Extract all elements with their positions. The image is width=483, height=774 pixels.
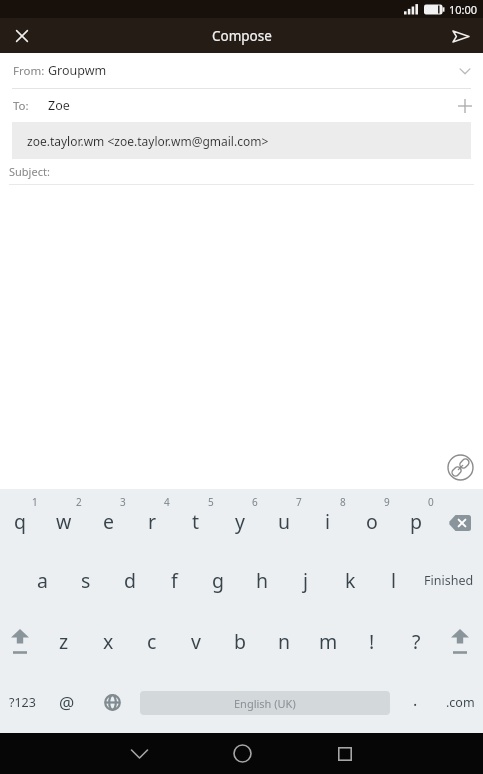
button[interactable]: u (262, 489, 306, 550)
button[interactable]: z (42, 611, 86, 672)
staticText: ! (369, 628, 375, 655)
staticText: s (81, 567, 91, 594)
staticText: @ (59, 691, 75, 714)
staticText: 3 (120, 495, 126, 509)
staticText: c (147, 628, 157, 655)
staticText: q (14, 508, 26, 535)
staticText: Groupwm (48, 62, 107, 79)
button[interactable]: r (130, 489, 174, 550)
staticText: Subject: (9, 164, 50, 179)
button[interactable] (447, 454, 474, 481)
staticText: 7 (296, 495, 302, 509)
button[interactable]: a (20, 550, 64, 611)
button[interactable]: h (240, 550, 284, 611)
button[interactable]: t (174, 489, 218, 550)
button[interactable]: f (152, 550, 196, 611)
button[interactable]: o (350, 489, 394, 550)
button[interactable]: ?123 (0, 672, 44, 733)
staticText: ? (412, 628, 421, 655)
button[interactable]: @ (44, 672, 90, 733)
button[interactable]: j (284, 550, 328, 611)
staticText: x (103, 628, 114, 655)
staticText: o (366, 508, 378, 535)
staticText: e (103, 508, 114, 535)
button[interactable]: ? (394, 611, 438, 672)
button[interactable]: k (328, 550, 372, 611)
staticText: b (234, 628, 246, 655)
staticText: v (191, 628, 201, 655)
button[interactable] (451, 26, 471, 46)
staticText: p (410, 508, 422, 535)
staticText: English (UK) (234, 696, 296, 711)
staticText: t (192, 508, 200, 535)
staticText: j (303, 567, 309, 594)
staticText: Finished (424, 572, 474, 589)
staticText: k (345, 567, 356, 594)
staticText: 5 (208, 495, 214, 509)
button[interactable]: .com (437, 672, 483, 733)
staticText: y (235, 508, 245, 535)
button[interactable]: ! (350, 611, 394, 672)
staticText: d (124, 567, 136, 594)
staticText: r (148, 508, 157, 535)
button[interactable] (310, 733, 380, 774)
button[interactable]: e (86, 489, 130, 550)
staticText: z (59, 628, 69, 655)
button[interactable]: c (130, 611, 174, 672)
staticText: From: (13, 63, 45, 79)
button[interactable]: Finished (416, 550, 481, 611)
button[interactable]: Subject: (0, 159, 483, 184)
button[interactable]: To: (0, 89, 483, 122)
staticText: 10:00 (449, 2, 478, 17)
staticText: 8 (340, 495, 346, 509)
button[interactable]: n (262, 611, 306, 672)
button[interactable]: b (218, 611, 262, 672)
button[interactable] (0, 611, 42, 672)
button[interactable]: m (306, 611, 350, 672)
button[interactable]: . (394, 672, 437, 733)
staticText: 1 (32, 495, 38, 509)
button[interactable]: i (306, 489, 350, 550)
button[interactable]: From: (0, 53, 483, 88)
staticText: u (278, 508, 291, 535)
staticText: g (212, 567, 224, 594)
staticText: m (319, 628, 338, 655)
staticText: Zoe (48, 97, 70, 114)
staticText: l (391, 567, 397, 594)
staticText: 6 (252, 495, 258, 509)
button[interactable]: s (64, 550, 108, 611)
button[interactable] (438, 611, 481, 672)
staticText: a (37, 567, 48, 594)
button[interactable]: v (174, 611, 218, 672)
button[interactable]: g (196, 550, 240, 611)
button[interactable]: l (372, 550, 416, 611)
staticText: f (171, 567, 178, 594)
staticText: i (325, 508, 331, 535)
button[interactable] (90, 672, 135, 733)
button[interactable]: zoe.taylor.wm <zoe.taylor.wm@gmail.com> (12, 122, 471, 159)
staticText: zoe.taylor.wm <zoe.taylor.wm@gmail.com> (27, 133, 269, 149)
button[interactable] (438, 489, 481, 550)
button[interactable]: w (42, 489, 86, 550)
button[interactable] (207, 733, 277, 774)
staticText: Compose (212, 27, 272, 45)
staticText: 4 (164, 495, 170, 509)
button[interactable]: y (218, 489, 262, 550)
button[interactable]: d (108, 550, 152, 611)
button[interactable]: x (86, 611, 130, 672)
staticText: h (256, 567, 269, 594)
staticText: . (413, 689, 418, 711)
staticText: To: (13, 98, 29, 114)
staticText: 9 (384, 495, 390, 509)
button[interactable] (104, 733, 174, 774)
staticText: w (56, 508, 72, 535)
staticText: ?123 (9, 694, 36, 711)
button[interactable]: q (0, 489, 42, 550)
button[interactable]: English (UK) (135, 672, 394, 733)
staticText: 2 (76, 495, 82, 509)
staticText: n (278, 628, 291, 655)
staticText: 0 (428, 495, 434, 509)
button[interactable]: p (394, 489, 438, 550)
button[interactable] (12, 26, 32, 46)
staticText: .com (446, 694, 475, 711)
